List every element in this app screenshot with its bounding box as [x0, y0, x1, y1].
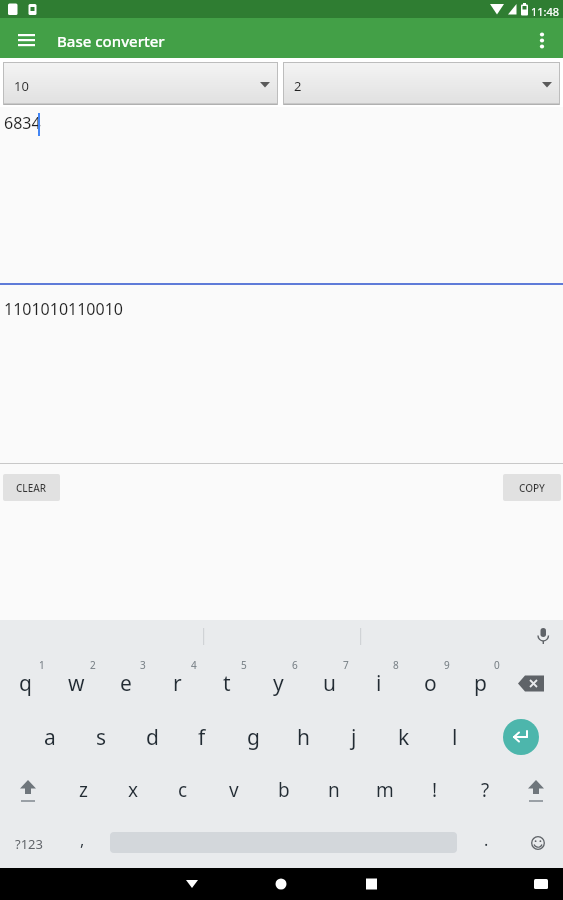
- staticText: j: [351, 723, 357, 752]
- button[interactable]: a: [25, 711, 75, 763]
- button[interactable]: [3, 62, 278, 105]
- staticText: 2: [90, 658, 96, 672]
- button[interactable]: [283, 62, 560, 105]
- button[interactable]: o: [405, 657, 455, 709]
- button[interactable]: e: [101, 657, 151, 709]
- staticText: h: [297, 723, 310, 752]
- button[interactable]: CLEAR: [3, 474, 60, 501]
- button[interactable]: s: [76, 711, 126, 763]
- button[interactable]: y: [253, 657, 303, 709]
- button[interactable]: c: [158, 764, 208, 816]
- staticText: r: [173, 669, 182, 698]
- staticText: ,: [80, 829, 85, 851]
- staticText: 3: [140, 658, 146, 672]
- button[interactable]: t: [202, 657, 252, 709]
- staticText: 4: [191, 658, 197, 672]
- staticText: l: [452, 723, 458, 752]
- button[interactable]: q: [0, 657, 50, 709]
- button[interactable]: [512, 818, 562, 868]
- staticText: 10: [14, 77, 29, 95]
- button[interactable]: u: [304, 657, 354, 709]
- button[interactable]: x: [108, 764, 158, 816]
- button[interactable]: j: [329, 711, 379, 763]
- button[interactable]: z: [58, 764, 108, 816]
- staticText: m: [376, 777, 394, 803]
- staticText: d: [146, 723, 159, 752]
- staticText: x: [128, 777, 139, 803]
- button[interactable]: [3, 764, 53, 816]
- staticText: 2: [294, 77, 302, 95]
- staticText: b: [278, 777, 290, 803]
- button[interactable]: g: [228, 711, 278, 763]
- button[interactable]: p: [455, 657, 505, 709]
- staticText: ?: [481, 777, 490, 803]
- staticText: c: [178, 777, 188, 803]
- button[interactable]: d: [127, 711, 177, 763]
- staticText: 5: [241, 658, 247, 672]
- button[interactable]: i: [354, 657, 404, 709]
- button[interactable]: k: [379, 711, 429, 763]
- button[interactable]: ?123: [4, 820, 54, 868]
- button[interactable]: l: [430, 711, 480, 763]
- staticText: p: [474, 669, 487, 698]
- staticText: w: [68, 669, 85, 698]
- button[interactable]: f: [177, 711, 227, 763]
- staticText: !: [432, 777, 438, 803]
- button[interactable]: [10, 24, 43, 53]
- staticText: z: [79, 777, 88, 803]
- button[interactable]: ?: [460, 764, 510, 816]
- staticText: i: [376, 669, 382, 698]
- button[interactable]: w: [51, 657, 101, 709]
- staticText: .: [484, 829, 489, 851]
- button[interactable]: [346, 868, 396, 900]
- button[interactable]: h: [278, 711, 328, 763]
- staticText: 0: [494, 658, 500, 672]
- staticText: CLEAR: [16, 481, 47, 495]
- staticText: COPY: [519, 481, 545, 495]
- staticText: u: [323, 669, 336, 698]
- button[interactable]: v: [209, 764, 259, 816]
- staticText: v: [229, 777, 239, 803]
- button[interactable]: COPY: [503, 474, 561, 501]
- staticText: q: [19, 669, 32, 698]
- staticText: Base converter: [57, 31, 165, 51]
- staticText: e: [120, 669, 132, 698]
- staticText: k: [398, 723, 410, 752]
- button[interactable]: .: [461, 814, 511, 866]
- staticText: f: [198, 723, 206, 752]
- button[interactable]: [511, 764, 561, 816]
- staticText: ?123: [15, 835, 43, 853]
- button[interactable]: !: [410, 764, 460, 816]
- button[interactable]: [167, 868, 217, 900]
- staticText: 9: [444, 658, 450, 672]
- staticText: 6834: [4, 112, 41, 134]
- button[interactable]: b: [259, 764, 309, 816]
- staticText: n: [328, 777, 340, 803]
- staticText: 8: [393, 658, 399, 672]
- staticText: 7: [343, 658, 349, 672]
- staticText: a: [44, 723, 56, 752]
- button[interactable]: ,: [57, 814, 107, 866]
- staticText: 1101010110010: [4, 298, 123, 320]
- button[interactable]: [256, 868, 306, 900]
- staticText: 11:48: [531, 4, 560, 19]
- button[interactable]: m: [360, 764, 410, 816]
- button[interactable]: [508, 657, 560, 709]
- staticText: y: [273, 669, 284, 698]
- button[interactable]: r: [152, 657, 202, 709]
- button[interactable]: n: [309, 764, 359, 816]
- staticText: 1: [39, 658, 45, 672]
- staticText: t: [223, 669, 231, 698]
- staticText: 6: [292, 658, 298, 672]
- staticText: o: [424, 669, 437, 698]
- staticText: g: [247, 723, 260, 752]
- staticText: s: [96, 723, 107, 752]
- button[interactable]: [503, 719, 539, 755]
